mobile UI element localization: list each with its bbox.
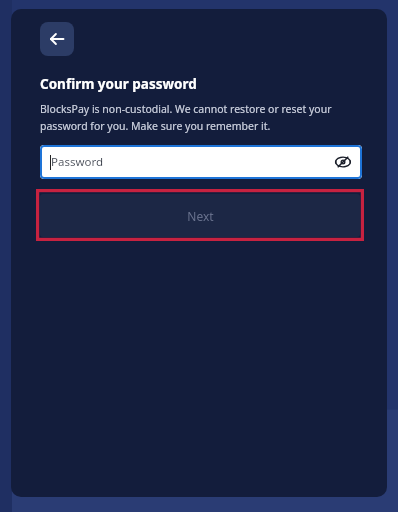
button[interactable]: Back <box>40 22 74 56</box>
staticText: Password <box>51 154 104 170</box>
button[interactable]: Next <box>40 194 360 237</box>
staticText: Next <box>187 208 214 224</box>
staticText: Confirm your password <box>40 75 197 93</box>
button[interactable]: Password <box>40 145 362 179</box>
button[interactable]: Show password <box>333 152 353 172</box>
staticText: BlocksPay is non-custodial. We cannot re… <box>40 102 358 133</box>
